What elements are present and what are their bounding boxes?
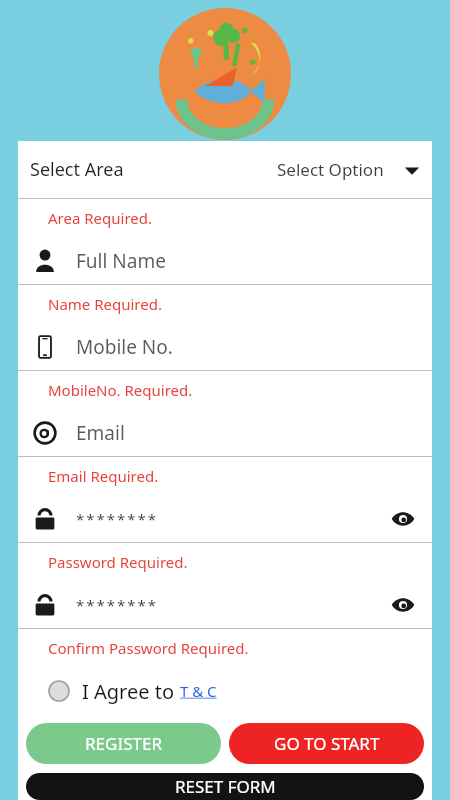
- staticText: Full Name: [76, 248, 166, 274]
- staticText: Name Required.: [48, 294, 162, 314]
- button[interactable]: Name Required.: [18, 285, 432, 370]
- staticText: Area Required.: [48, 208, 153, 228]
- button[interactable]: Password Required.: [18, 543, 432, 628]
- button[interactable]: Area Required.: [18, 199, 432, 284]
- button[interactable]: I Agree to: [18, 667, 432, 715]
- staticText: MobileNo. Required.: [48, 380, 193, 400]
- staticText: RESET FORM: [175, 775, 276, 798]
- staticText: Email Required.: [48, 466, 159, 486]
- staticText: Select Area: [30, 157, 124, 182]
- button[interactable]: Show password: [388, 504, 418, 534]
- staticText: Select Option: [277, 158, 384, 181]
- staticText: Mobile No.: [76, 334, 173, 360]
- button[interactable]: GO TO START: [229, 723, 424, 764]
- button[interactable]: T & C: [180, 681, 217, 701]
- staticText: GO TO START: [274, 732, 380, 755]
- button[interactable]: Select Area: [18, 141, 432, 198]
- button[interactable]: Show password: [388, 590, 418, 620]
- staticText: I Agree to: [82, 678, 180, 705]
- staticText: Email: [76, 420, 125, 446]
- staticText: REGISTER: [85, 732, 162, 755]
- button[interactable]: REGISTER: [26, 723, 221, 764]
- staticText: ********: [76, 509, 159, 529]
- staticText: Confirm Password Required.: [48, 638, 249, 658]
- staticText: Password Required.: [48, 552, 188, 572]
- button[interactable]: Email Required.: [18, 457, 432, 542]
- staticText: ********: [76, 595, 159, 615]
- button[interactable]: RESET FORM: [26, 773, 424, 800]
- button[interactable]: MobileNo. Required.: [18, 371, 432, 456]
